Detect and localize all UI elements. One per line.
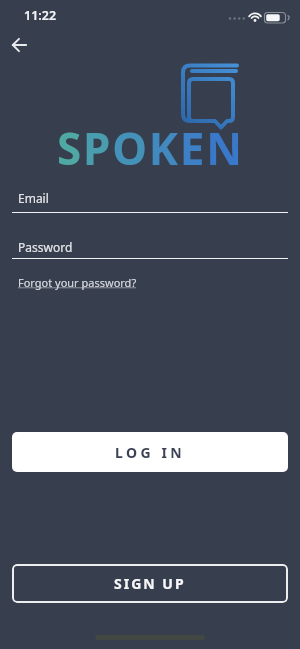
- staticText: 11:22: [24, 7, 57, 24]
- button[interactable]: SIGN UP: [12, 564, 288, 603]
- staticText: LOG IN: [115, 443, 186, 462]
- staticText: SPOKEN: [57, 118, 244, 178]
- button[interactable]: Password: [12, 232, 288, 260]
- button[interactable]: LOG IN: [12, 432, 288, 472]
- staticText: Email: [18, 190, 49, 206]
- button[interactable]: [5, 33, 33, 57]
- button[interactable]: Email: [12, 186, 288, 214]
- staticText: Password: [18, 239, 73, 255]
- staticText: Forgot your password?: [18, 275, 137, 290]
- button[interactable]: Forgot your password?: [18, 275, 137, 290]
- staticText: SIGN UP: [114, 574, 186, 593]
